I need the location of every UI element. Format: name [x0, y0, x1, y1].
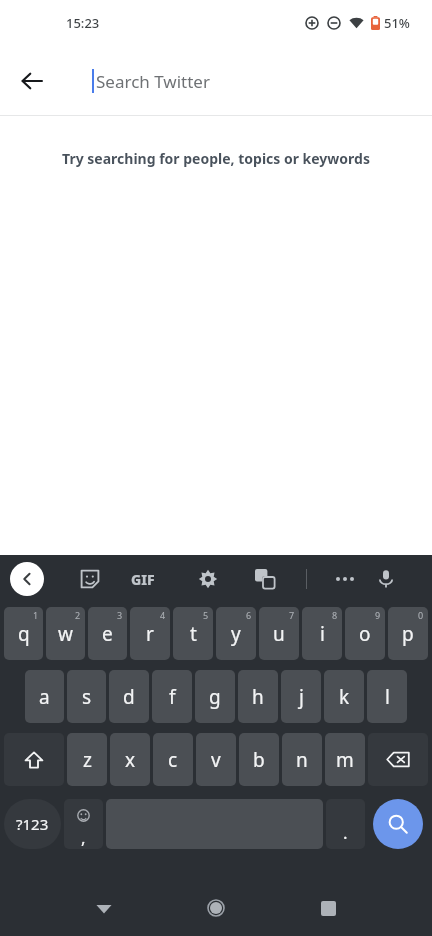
- button[interactable]: GIF: [122, 558, 164, 600]
- button[interactable]: Emoji and comma: [64, 799, 103, 849]
- staticText: 15:23: [66, 14, 100, 32]
- staticText: t: [190, 621, 197, 647]
- button[interactable]: q: [4, 607, 43, 660]
- staticText: j: [299, 684, 304, 710]
- staticText: s: [82, 684, 92, 710]
- button[interactable]: o: [345, 607, 385, 660]
- staticText: l: [385, 684, 390, 710]
- staticText: f: [169, 684, 176, 710]
- button[interactable]: .: [326, 799, 365, 849]
- button[interactable]: p: [388, 607, 428, 660]
- button[interactable]: a: [25, 670, 64, 723]
- button[interactable]: Stickers: [72, 561, 108, 597]
- staticText: b: [253, 747, 265, 773]
- button[interactable]: w: [46, 607, 85, 660]
- button[interactable]: f: [152, 670, 192, 723]
- staticText: z: [83, 747, 92, 773]
- button[interactable]: Home: [194, 886, 238, 930]
- button[interactable]: Shift: [4, 733, 64, 786]
- button[interactable]: k: [324, 670, 364, 723]
- staticText: u: [273, 621, 285, 647]
- staticText: x: [125, 747, 136, 773]
- button[interactable]: c: [153, 733, 193, 786]
- staticText: h: [252, 684, 264, 710]
- button[interactable]: j: [281, 670, 321, 723]
- button[interactable]: g: [195, 670, 235, 723]
- staticText: e: [102, 621, 113, 647]
- staticText: 0: [418, 609, 424, 621]
- staticText: p: [402, 621, 414, 647]
- button[interactable]: Back: [10, 59, 54, 103]
- button[interactable]: d: [109, 670, 149, 723]
- button[interactable]: e: [88, 607, 127, 660]
- button[interactable]: i: [302, 607, 342, 660]
- button[interactable]: r: [130, 607, 170, 660]
- button[interactable]: s: [67, 670, 106, 723]
- staticText: c: [168, 747, 178, 773]
- staticText: 4: [160, 609, 166, 621]
- staticText: w: [58, 621, 73, 647]
- button[interactable]: ?123: [4, 799, 61, 849]
- button[interactable]: n: [282, 733, 322, 786]
- staticText: q: [18, 621, 30, 647]
- staticText: 9: [375, 609, 381, 621]
- button[interactable]: t: [173, 607, 213, 660]
- staticText: 1: [33, 609, 39, 621]
- staticText: m: [336, 747, 354, 773]
- staticText: ,: [81, 826, 86, 849]
- staticText: r: [146, 621, 154, 647]
- staticText: 5: [203, 609, 209, 621]
- button[interactable]: Translate: [247, 561, 283, 597]
- button[interactable]: Voice input: [368, 561, 404, 597]
- staticText: 2: [75, 609, 81, 621]
- staticText: n: [296, 747, 308, 773]
- staticText: 51%: [384, 14, 410, 32]
- staticText: d: [123, 684, 135, 710]
- staticText: 3: [117, 609, 123, 621]
- button[interactable]: x: [110, 733, 150, 786]
- staticText: o: [359, 621, 371, 647]
- button[interactable]: Settings: [190, 561, 226, 597]
- button[interactable]: Recent apps: [308, 888, 348, 928]
- button[interactable]: More options: [326, 560, 364, 598]
- button[interactable]: h: [238, 670, 278, 723]
- staticText: .: [343, 821, 348, 844]
- button[interactable]: Back: [84, 888, 124, 928]
- staticText: y: [231, 621, 241, 647]
- button[interactable]: Backspace: [368, 733, 428, 786]
- staticText: 7: [289, 609, 295, 621]
- staticText: Search Twitter: [96, 70, 210, 93]
- button[interactable]: y: [216, 607, 256, 660]
- button[interactable]: Search: [373, 799, 423, 849]
- staticText: k: [339, 684, 350, 710]
- staticText: 6: [246, 609, 252, 621]
- staticText: 8: [332, 609, 338, 621]
- staticText: GIF: [131, 570, 155, 589]
- button[interactable]: l: [367, 670, 407, 723]
- button[interactable]: v: [196, 733, 236, 786]
- staticText: a: [39, 684, 50, 710]
- button[interactable]: z: [67, 733, 107, 786]
- staticText: Try searching for people, topics or keyw…: [62, 149, 370, 168]
- button[interactable]: m: [325, 733, 365, 786]
- staticText: i: [320, 621, 325, 647]
- button[interactable]: u: [259, 607, 299, 660]
- button[interactable]: b: [239, 733, 279, 786]
- staticText: g: [209, 684, 221, 710]
- staticText: ?123: [16, 814, 49, 834]
- staticText: v: [211, 747, 221, 773]
- button[interactable]: Expand toolbar: [10, 562, 44, 596]
